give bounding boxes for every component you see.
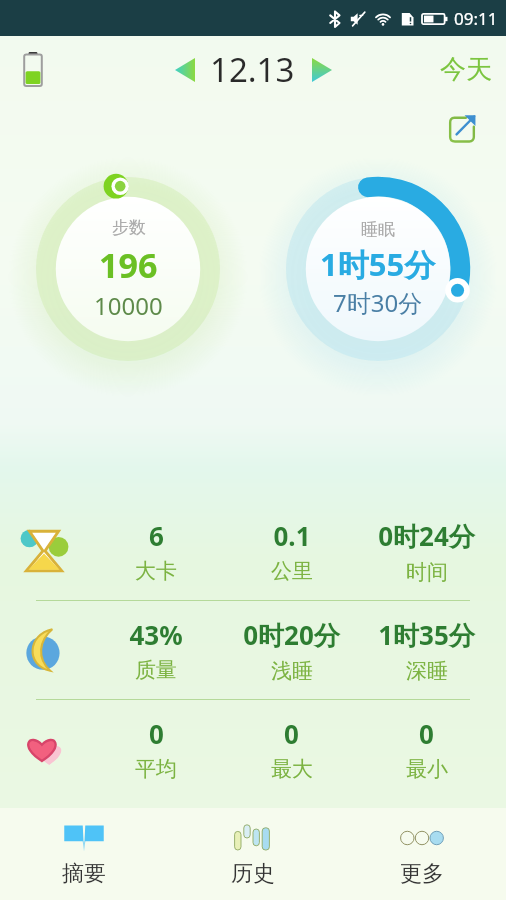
staticText: 1时35分 bbox=[378, 617, 475, 653]
staticText: 摘要 bbox=[62, 860, 106, 888]
button[interactable]: Heart rate bbox=[0, 700, 506, 798]
staticText: 今天 bbox=[440, 53, 492, 86]
staticText: 0 bbox=[284, 716, 299, 751]
button[interactable]: Next day bbox=[305, 53, 339, 87]
staticText: 睡眠 bbox=[361, 219, 395, 240]
staticText: 0时20分 bbox=[243, 617, 340, 653]
button[interactable]: 历史 bbox=[168, 808, 337, 900]
button[interactable]: 摘要 bbox=[0, 808, 168, 900]
staticText: 平均 bbox=[135, 756, 177, 782]
staticText: 时间 bbox=[406, 559, 448, 585]
button[interactable]: 步数 bbox=[36, 177, 220, 361]
staticText: 大卡 bbox=[135, 558, 177, 584]
staticText: 最小 bbox=[406, 756, 448, 782]
staticText: 0.1 bbox=[273, 518, 311, 553]
staticText: 7时30分 bbox=[333, 286, 423, 319]
staticText: 公里 bbox=[271, 558, 313, 584]
staticText: 12.13 bbox=[210, 47, 295, 92]
staticText: 0 bbox=[419, 716, 434, 751]
staticText: 步数 bbox=[112, 217, 146, 238]
button[interactable]: Activity bbox=[0, 502, 506, 600]
button[interactable]: 更多 bbox=[337, 808, 506, 900]
staticText: 0时24分 bbox=[378, 518, 475, 554]
staticText: 最大 bbox=[271, 756, 313, 782]
staticText: 43% bbox=[129, 617, 183, 652]
staticText: 09:11 bbox=[454, 7, 498, 30]
button[interactable]: Sleep bbox=[0, 601, 506, 699]
button[interactable]: 今天 bbox=[440, 53, 492, 86]
staticText: 1时55分 bbox=[320, 243, 436, 285]
button[interactable]: Previous day bbox=[168, 53, 202, 87]
staticText: 0 bbox=[149, 716, 164, 751]
staticText: 更多 bbox=[400, 860, 444, 888]
staticText: 深睡 bbox=[406, 658, 448, 684]
staticText: 10000 bbox=[94, 289, 163, 322]
button[interactable]: 睡眠 bbox=[286, 177, 470, 361]
staticText: 历史 bbox=[231, 860, 275, 888]
button[interactable]: Share bbox=[440, 106, 484, 150]
staticText: 质量 bbox=[135, 657, 177, 683]
button[interactable]: Device battery bbox=[16, 47, 50, 91]
staticText: 6 bbox=[149, 518, 164, 553]
staticText: 浅睡 bbox=[271, 658, 313, 684]
staticText: 196 bbox=[99, 242, 158, 288]
